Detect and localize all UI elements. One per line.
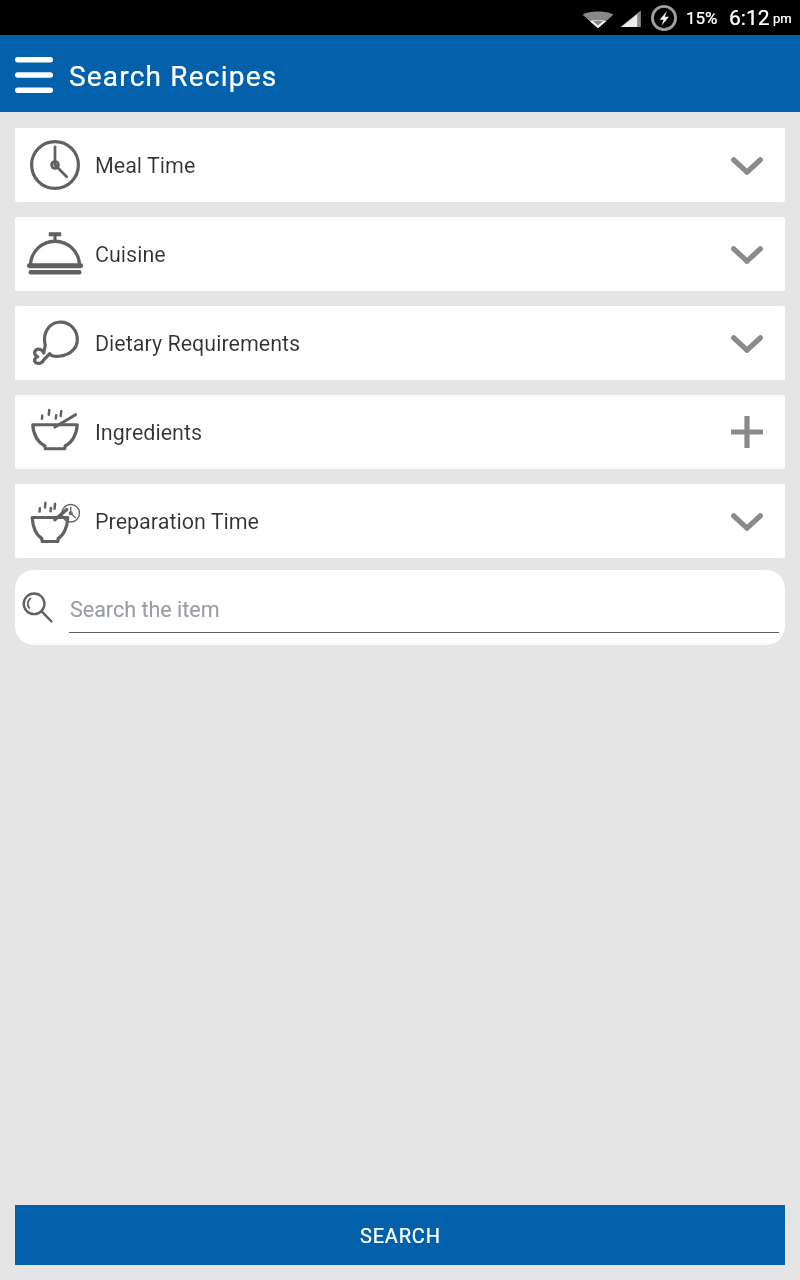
button[interactable]: Preparation Time (15, 484, 785, 558)
button[interactable]: SEARCH (15, 1205, 785, 1265)
staticText: 6:12 (729, 6, 770, 31)
button[interactable]: Open navigation menu (15, 57, 53, 93)
button[interactable]: Dietary Requirements (15, 306, 785, 380)
staticText: SEARCH (360, 1224, 441, 1247)
button[interactable]: Ingredients (15, 395, 785, 469)
staticText: pm (773, 11, 792, 26)
button[interactable]: Meal Time (15, 128, 785, 202)
staticText: Cuisine (95, 242, 166, 267)
button[interactable]: Cuisine (15, 217, 785, 291)
staticText: Ingredients (95, 420, 203, 445)
staticText: Meal Time (95, 153, 196, 178)
staticText: Search the item (70, 597, 220, 622)
staticText: Dietary Requirements (95, 331, 301, 356)
staticText: Preparation Time (95, 509, 260, 534)
staticText: Search Recipes (69, 60, 278, 93)
staticText: 15% (686, 8, 718, 28)
button[interactable]: Search the item (15, 570, 785, 645)
